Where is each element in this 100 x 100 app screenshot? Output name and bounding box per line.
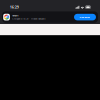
- staticText: ОТКРЫТЬ: [79, 15, 90, 19]
- staticText: 16:29: [10, 5, 19, 9]
- staticText: Сегодня в 16:29 · Новое письмо: [12, 18, 45, 20]
- button[interactable]: Google: [2, 11, 98, 23]
- staticText: Google: [12, 14, 18, 17]
